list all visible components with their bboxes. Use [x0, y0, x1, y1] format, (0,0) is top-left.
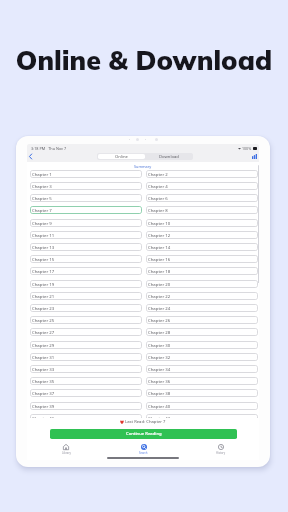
button[interactable]: Chapter 38	[146, 389, 258, 397]
button[interactable]: Chapter 6	[146, 194, 258, 202]
staticText: Chapter 20	[148, 281, 171, 287]
button[interactable]: Chapter 27	[30, 328, 142, 336]
button[interactable]: Chapter 20	[146, 280, 258, 288]
button[interactable]: Download	[145, 154, 192, 159]
staticText: Chapter 7	[32, 207, 52, 213]
button[interactable]: Chapter 15	[30, 255, 142, 263]
staticText: Chapter 11	[32, 232, 55, 238]
staticText: Chapter 15	[32, 256, 55, 262]
staticText: Chapter 16	[148, 256, 171, 262]
staticText: Chapter 31	[32, 354, 55, 360]
button[interactable]: Chapter 13	[30, 243, 142, 251]
button[interactable]: Chapter 12	[146, 231, 258, 239]
staticText: Chapter 2	[148, 171, 168, 177]
button[interactable]: Library	[27, 444, 105, 455]
button[interactable]: Chapter 29	[30, 341, 142, 349]
button[interactable]: Chapter 19	[30, 280, 142, 288]
button[interactable]: Search	[105, 444, 182, 455]
button[interactable]: Chapter 9	[30, 219, 142, 227]
staticText: Chapter 22	[148, 293, 171, 299]
staticText: Summary	[134, 164, 152, 169]
staticText: Chapter 10	[148, 220, 171, 226]
staticText: Online	[115, 154, 128, 159]
staticText: Chapter 40	[148, 403, 171, 409]
button[interactable]: Chapter 33	[30, 365, 142, 373]
staticText: Chapter 1	[32, 171, 52, 177]
button[interactable]: Chapter 22	[146, 292, 258, 300]
button[interactable]: Chapter 25	[30, 316, 142, 324]
button[interactable]: Back	[27, 151, 35, 161]
staticText: Chapter 33	[32, 366, 55, 372]
staticText: Online & Download	[0, 43, 288, 77]
staticText: Chapter 13	[32, 244, 55, 250]
button[interactable]: Sort order	[249, 151, 259, 161]
staticText: Chapter 18	[148, 268, 171, 274]
staticText: Chapter 27	[32, 329, 55, 335]
button[interactable]: Chapter 42	[146, 414, 258, 418]
button[interactable]: Chapter 23	[30, 304, 142, 312]
staticText: History	[216, 451, 226, 455]
button[interactable]: Chapter 8	[146, 206, 258, 214]
staticText: Chapter 39	[32, 403, 55, 409]
staticText: Chapter 5	[32, 195, 52, 201]
button[interactable]: Chapter 34	[146, 365, 258, 373]
staticText: Chapter 29	[32, 342, 55, 348]
button[interactable]: Continue Reading	[50, 429, 237, 439]
button[interactable]: Chapter 37	[30, 389, 142, 397]
staticText: Chapter 17	[32, 268, 55, 274]
staticText: Chapter 6	[148, 195, 168, 201]
button[interactable]: Chapter 28	[146, 328, 258, 336]
button[interactable]: Chapter 24	[146, 304, 258, 312]
staticText: Chapter 34	[148, 366, 171, 372]
button[interactable]: Chapter 39	[30, 402, 142, 410]
staticText: Continue Reading	[126, 431, 162, 437]
staticText: Chapter 36	[148, 378, 171, 384]
button[interactable]: History	[182, 444, 259, 455]
staticText: Chapter 24	[148, 305, 171, 311]
staticText: Chapter 23	[32, 305, 55, 311]
button[interactable]: Chapter 41	[30, 414, 142, 418]
staticText: Chapter 8	[148, 207, 168, 213]
button[interactable]: Chapter 11	[30, 231, 142, 239]
staticText: Chapter 30	[148, 342, 171, 348]
staticText: Chapter 4	[148, 183, 168, 189]
button[interactable]: Chapter 1	[30, 170, 142, 178]
staticText: Chapter 38	[148, 390, 171, 396]
staticText: Chapter 32	[148, 354, 171, 360]
button[interactable]: Chapter 30	[146, 341, 258, 349]
staticText: Chapter 28	[148, 329, 171, 335]
button[interactable]: Chapter 32	[146, 353, 258, 361]
button[interactable]: Online	[98, 154, 145, 159]
button[interactable]: Chapter 2	[146, 170, 258, 178]
button[interactable]: Chapter 40	[146, 402, 258, 410]
button[interactable]: Chapter 26	[146, 316, 258, 324]
staticText: Download	[159, 154, 179, 159]
button[interactable]: Chapter 14	[146, 243, 258, 251]
button[interactable]: Chapter 7	[30, 206, 142, 214]
button[interactable]: Chapter 4	[146, 182, 258, 190]
staticText: Search	[139, 451, 148, 455]
button[interactable]: Chapter 5	[30, 194, 142, 202]
button[interactable]: Chapter 35	[30, 377, 142, 385]
button[interactable]: Chapter 10	[146, 219, 258, 227]
button[interactable]: Chapter 18	[146, 267, 258, 275]
staticText: Chapter 37	[32, 390, 55, 396]
staticText: Chapter 9	[32, 220, 52, 226]
staticText: Chapter 12	[148, 232, 171, 238]
button[interactable]: Chapter 3	[30, 182, 142, 190]
button[interactable]: Chapter 36	[146, 377, 258, 385]
staticText: Chapter 21	[32, 293, 55, 299]
staticText: Chapter 3	[32, 183, 52, 189]
button[interactable]: Chapter 17	[30, 267, 142, 275]
staticText: Chapter 41	[32, 415, 55, 418]
staticText: Chapter 25	[32, 317, 55, 323]
staticText: Library	[62, 451, 71, 455]
staticText: Chapter 42	[148, 415, 171, 418]
staticText: Chapter 35	[32, 378, 55, 384]
staticText: Last Read: Chapter 7	[125, 419, 166, 425]
staticText: Chapter 14	[148, 244, 171, 250]
staticText: Chapter 26	[148, 317, 171, 323]
button[interactable]: Chapter 16	[146, 255, 258, 263]
button[interactable]: Chapter 21	[30, 292, 142, 300]
button[interactable]: Chapter 31	[30, 353, 142, 361]
